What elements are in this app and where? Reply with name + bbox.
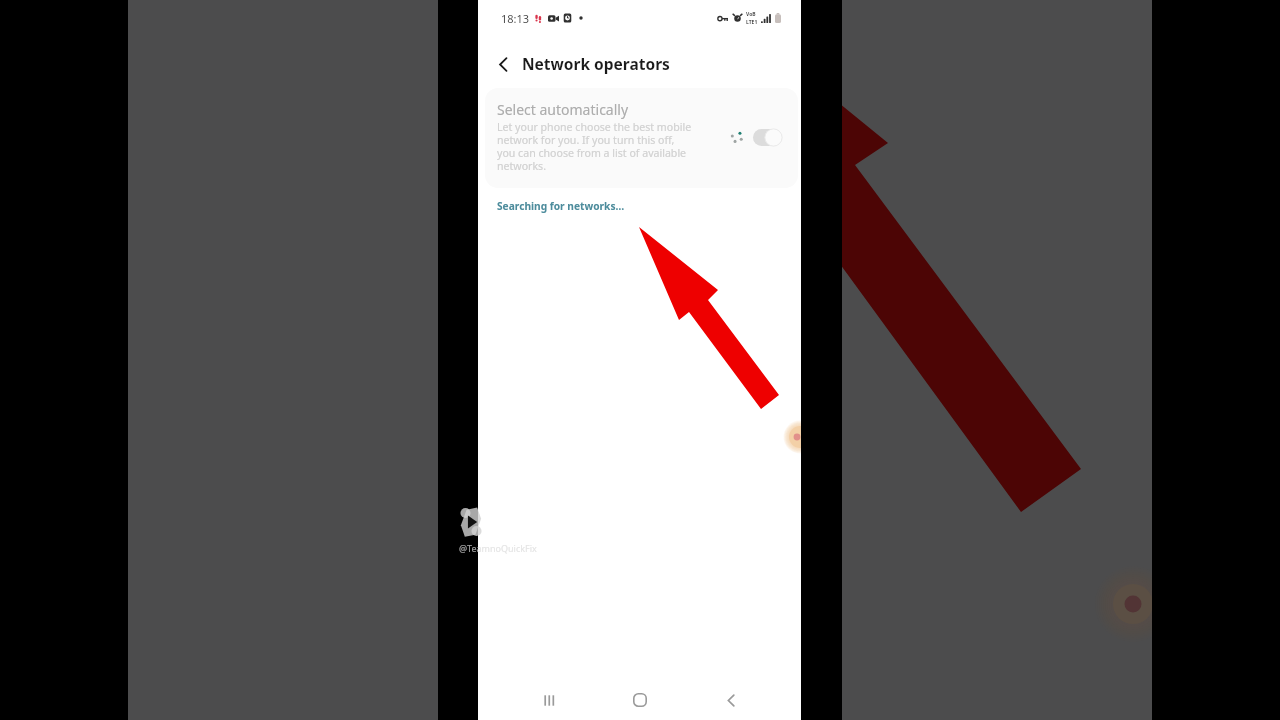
- staticText: Searching for networks…: [497, 199, 625, 213]
- button[interactable]: Recent apps: [528, 680, 572, 720]
- button[interactable]: Select automatically: [485, 88, 798, 188]
- button[interactable]: Select automatically: [753, 129, 782, 146]
- button[interactable]: Back: [709, 680, 753, 720]
- staticText: @TeamnoQuickFix: [459, 542, 537, 554]
- button[interactable]: Home: [618, 680, 662, 720]
- staticText: LTE1: [746, 19, 758, 26]
- button[interactable]: Searching for networks…: [478, 188, 801, 224]
- staticText: VoB: [746, 11, 756, 18]
- staticText: Network operators: [522, 53, 670, 74]
- staticText: Let your phone choose the best mobile ne…: [497, 120, 692, 174]
- button[interactable]: Navigate up: [489, 50, 517, 78]
- staticText: 18:13: [501, 11, 530, 26]
- staticText: Select automatically: [497, 100, 629, 119]
